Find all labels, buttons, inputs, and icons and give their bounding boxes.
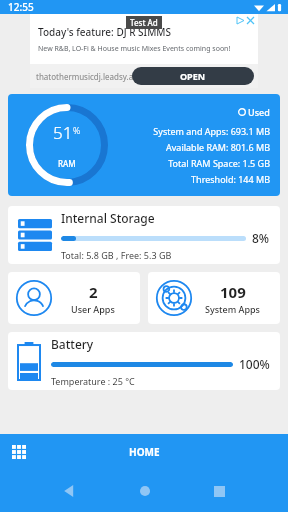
staticText: 100% [239,356,270,372]
other: Apps [12,445,26,459]
staticText: thatothermusicdj.leadsy.app [36,71,144,82]
staticText: Battery [51,336,94,352]
staticText: System Apps [205,303,260,315]
staticText: Today's feature: DJ R SIMMS [38,25,172,39]
staticText: OPEN [180,70,206,82]
staticText: 109 [220,282,246,302]
staticText: Test Ad [130,17,158,28]
staticText: User Apps [71,303,115,315]
staticText: Internal Storage [61,210,155,226]
staticText: Total RAM Space: 1.5 GB [168,157,270,169]
button[interactable]: Apps [0,434,288,470]
staticText: 51 [53,121,73,144]
other: Home [139,485,151,497]
staticText: Used [248,106,270,118]
button[interactable]: OPEN [132,67,254,85]
staticText: Available RAM: 801.6 MB [166,141,270,153]
staticText: Temperature : 25 °C [51,375,135,387]
other: User apps [15,279,53,317]
other: System apps [155,279,193,317]
staticText: Total: 5.8 GB , Free: 5.3 GB [61,249,172,261]
staticText: HOME [129,445,160,459]
staticText: % [73,124,81,136]
button[interactable]: System apps [148,272,280,324]
other: Back [63,485,75,497]
staticText: System and Apps: 693.1 MB [153,125,270,137]
staticText: 12:55 [8,0,34,14]
button[interactable]: Battery [8,332,280,390]
staticText: 2 [89,282,98,302]
staticText: New R&B, LO-Fi & House music Mixes Event… [38,44,231,54]
button[interactable]: 51 [8,94,280,196]
staticText: RAM [58,158,76,169]
staticText: Threshold: 144 MB [191,173,270,185]
button[interactable]: User apps [8,272,140,324]
staticText: 8% [252,230,270,246]
button[interactable]: Internal Storage [8,206,280,264]
